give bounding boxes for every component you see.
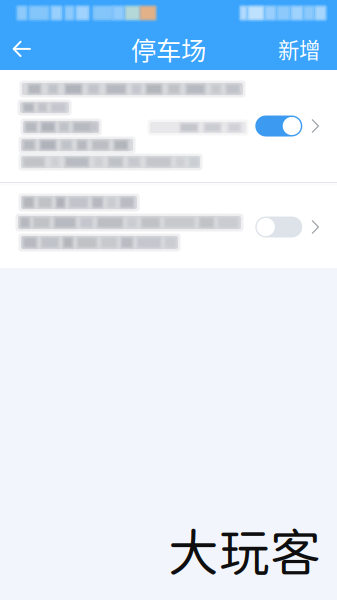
staticText: 新增	[278, 34, 320, 64]
button[interactable]: Back	[0, 28, 47, 69]
button[interactable]: 新增	[262, 23, 337, 75]
staticText: 大玩客	[168, 522, 321, 582]
button[interactable]	[0, 186, 337, 268]
staticText: 停车场	[131, 31, 206, 67]
button[interactable]	[0, 70, 337, 182]
